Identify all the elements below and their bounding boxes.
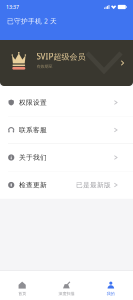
- staticText: SVIP超级会员: [36, 51, 85, 62]
- staticText: 有效期至: [36, 64, 52, 69]
- staticText: 关于我们: [19, 153, 47, 162]
- staticText: 首页: [18, 291, 26, 296]
- button[interactable]: 深度扫描: [44, 271, 89, 300]
- staticText: 检查更新: [19, 181, 47, 189]
- button[interactable]: SVIP超级会员: [0, 40, 133, 86]
- staticText: 我的: [107, 291, 115, 296]
- button[interactable]: 权限设置: [0, 89, 133, 116]
- button[interactable]: 关于我们: [0, 144, 133, 171]
- staticText: 已是最新版: [76, 181, 111, 189]
- button[interactable]: 检查更新: [0, 171, 133, 198]
- button[interactable]: 首页: [0, 271, 44, 300]
- staticText: 联系客服: [19, 126, 47, 134]
- button[interactable]: 联系客服: [0, 116, 133, 143]
- button[interactable]: 我的: [89, 271, 133, 300]
- staticText: 深度扫描: [58, 291, 74, 296]
- staticText: 已守护手机 2 天: [7, 17, 57, 25]
- staticText: 13:37: [6, 3, 19, 11]
- staticText: 权限设置: [19, 98, 47, 107]
